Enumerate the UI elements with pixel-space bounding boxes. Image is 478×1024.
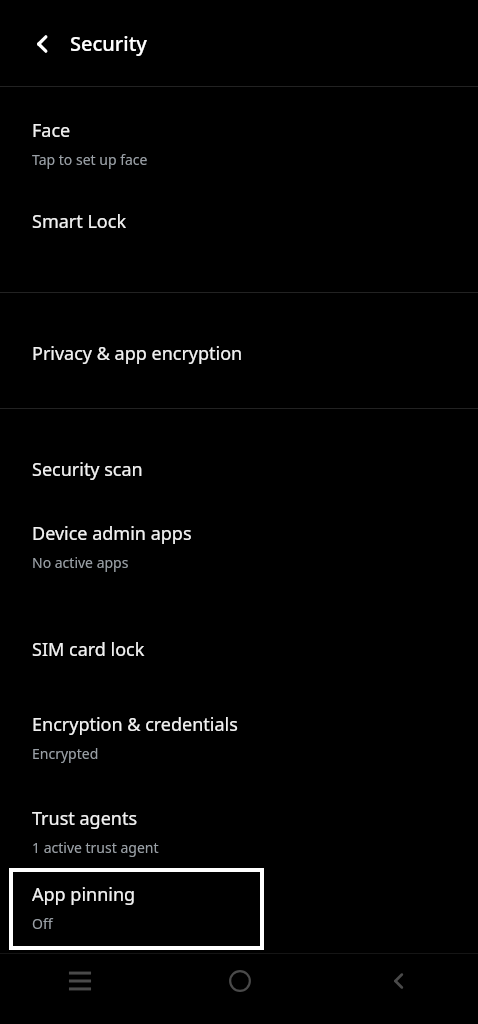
button[interactable]: Back xyxy=(319,953,478,1008)
button[interactable]: Face xyxy=(0,87,478,189)
staticText: Off xyxy=(32,914,53,933)
button[interactable]: Privacy & app encryption xyxy=(0,293,478,408)
staticText: Face xyxy=(32,118,71,143)
staticText: Device admin apps xyxy=(32,521,192,546)
staticText: SIM card lock xyxy=(32,637,145,662)
staticText: Encryption & credentials xyxy=(32,712,238,737)
button[interactable]: Trust agents xyxy=(0,793,478,866)
staticText: Trust agents xyxy=(32,806,138,831)
button[interactable]: Security scan xyxy=(0,409,478,510)
button[interactable]: Back xyxy=(22,23,64,65)
staticText: Security xyxy=(70,30,147,57)
staticText: Security scan xyxy=(32,457,143,482)
button[interactable]: SIM card lock xyxy=(0,605,478,699)
staticText: App pinning xyxy=(32,882,136,907)
staticText: Encrypted xyxy=(32,744,99,763)
button[interactable]: Recent apps xyxy=(0,953,160,1008)
button[interactable]: Smart Lock xyxy=(0,189,478,292)
button[interactable]: Encryption & credentials xyxy=(0,699,478,793)
staticText: No active apps xyxy=(32,553,129,572)
staticText: Privacy & app encryption xyxy=(32,341,243,366)
staticText: Tap to set up face xyxy=(32,150,148,169)
button[interactable]: Home xyxy=(160,953,319,1008)
staticText: 1 active trust agent xyxy=(32,838,159,857)
staticText: Smart Lock xyxy=(32,209,126,234)
button[interactable]: App pinning xyxy=(9,868,264,950)
button[interactable]: Device admin apps xyxy=(0,510,478,605)
